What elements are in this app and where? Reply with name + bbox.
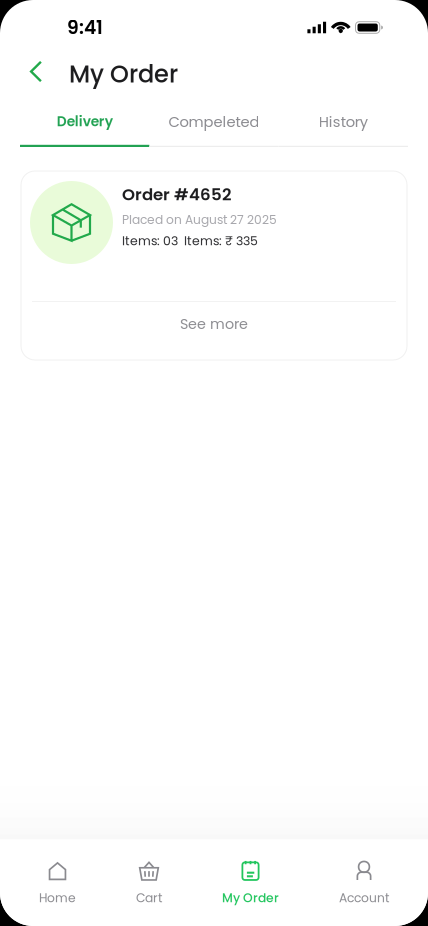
button[interactable]: History [279, 93, 408, 147]
button[interactable]: Account [339, 837, 389, 926]
staticText: Cart [136, 889, 162, 906]
staticText: Placed on August 27 2025 [122, 211, 277, 228]
staticText: 9:41 [67, 14, 103, 40]
button[interactable]: Cart [136, 837, 162, 926]
staticText: Items: 03 Items: ₹ 335 [122, 232, 258, 250]
staticText: Order #4652 [122, 183, 231, 206]
staticText: See more [180, 314, 248, 334]
button[interactable]: Delivery [20, 93, 149, 147]
staticText: History [319, 112, 368, 132]
button[interactable]: See more [21, 302, 407, 360]
button[interactable]: Back [15, 50, 57, 97]
staticText: Compeleted [168, 112, 259, 132]
button[interactable]: My Order [222, 837, 279, 926]
button[interactable]: Home [39, 837, 76, 926]
button[interactable]: Compeleted [149, 93, 279, 147]
staticText: Home [39, 889, 76, 906]
staticText: Delivery [57, 112, 113, 131]
staticText: Account [339, 889, 389, 906]
staticText: My Order [222, 889, 279, 906]
staticText: My Order [69, 57, 178, 91]
